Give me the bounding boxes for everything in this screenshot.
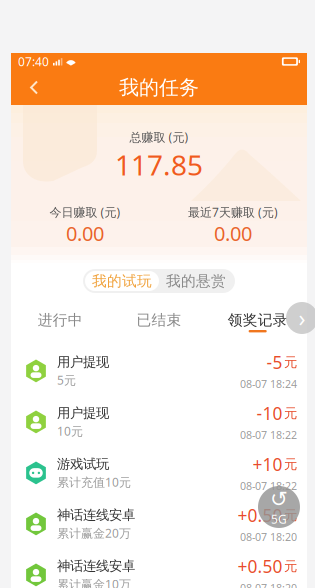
button[interactable]: Assistive touch <box>258 486 300 528</box>
staticText: 117.85 <box>115 146 203 183</box>
button[interactable]: 我的试玩 <box>85 271 159 291</box>
staticText: -5 <box>266 351 282 374</box>
button[interactable]: 用户提现 <box>11 345 307 396</box>
staticText: 元 <box>284 456 297 472</box>
staticText: 累计赢金20万 <box>57 525 131 541</box>
staticText: 08-07 18:22 <box>240 479 297 493</box>
staticText: 累计赢金10万 <box>57 576 131 588</box>
staticText: +10 <box>252 453 282 476</box>
button[interactable]: 神话连线安卓 <box>11 498 307 549</box>
staticText: ↺ <box>270 487 288 511</box>
button[interactable]: 领奖记录 <box>208 311 307 332</box>
button[interactable]: Back <box>17 70 51 104</box>
button[interactable]: 神话连线安卓 <box>11 549 307 588</box>
staticText: 08-07 18:22 <box>240 428 297 442</box>
staticText: 0.00 <box>214 220 252 247</box>
button[interactable]: 游戏试玩 <box>11 447 307 498</box>
staticText: 神话连线安卓 <box>57 558 135 574</box>
staticText: 最近7天赚取 (元) <box>188 204 278 220</box>
staticText: -10 <box>256 402 282 425</box>
button[interactable]: 用户提现 <box>11 396 307 447</box>
button[interactable]: Next <box>286 302 315 334</box>
staticText: 进行中 <box>38 311 83 329</box>
staticText: 07:40 <box>18 53 49 69</box>
staticText: › <box>298 303 305 333</box>
staticText: 元 <box>284 558 297 574</box>
staticText: 游戏试玩 <box>57 456 109 472</box>
staticText: 元 <box>284 405 297 421</box>
staticText: 我的悬赏 <box>166 272 226 290</box>
button[interactable]: 已结束 <box>110 311 208 332</box>
staticText: 08-07 18:20 <box>240 581 297 588</box>
staticText: 用户提现 <box>57 354 109 370</box>
staticText: 我的试玩 <box>92 272 152 290</box>
staticText: +0.50 <box>237 504 282 527</box>
staticText: 10元 <box>57 423 83 439</box>
button[interactable]: 进行中 <box>11 311 110 332</box>
staticText: 神话连线安卓 <box>57 507 135 523</box>
staticText: 累计充值10元 <box>57 474 131 490</box>
staticText: 我的任务 <box>119 75 199 100</box>
button[interactable]: 我的悬赏 <box>159 271 233 291</box>
staticText: 08-07 18:24 <box>240 377 297 391</box>
staticText: 08-07 18:20 <box>240 530 297 544</box>
staticText: 0.00 <box>66 220 104 247</box>
staticText: 5G <box>271 511 287 527</box>
staticText: 5元 <box>57 372 76 388</box>
staticText: 今日赚取 (元) <box>49 204 120 220</box>
staticText: 元 <box>284 354 297 370</box>
staticText: 已结束 <box>136 311 181 329</box>
staticText: 元 <box>284 507 297 523</box>
staticText: 总赚取 (元) <box>129 129 188 145</box>
staticText: 领奖记录 <box>228 311 288 329</box>
staticText: 用户提现 <box>57 405 109 421</box>
staticText: +0.50 <box>237 555 282 578</box>
